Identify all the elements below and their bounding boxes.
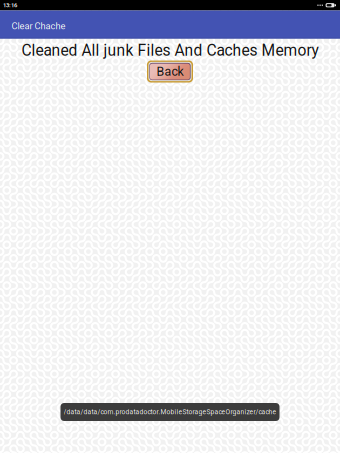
staticText: Cleaned All junk Files And Caches Memory: [21, 41, 318, 60]
staticText: 13:16: [3, 2, 17, 9]
staticText: Clear Chache: [11, 20, 65, 31]
staticText: Back: [156, 64, 183, 79]
button[interactable]: Back: [147, 60, 193, 82]
staticText: /data/data/com.prodatadoctor.MobileStora…: [63, 408, 276, 416]
